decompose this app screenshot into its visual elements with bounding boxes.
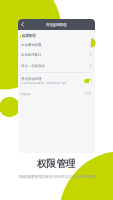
button[interactable]: 允许悬浮窗口	[18, 51, 95, 58]
button[interactable]: 允许通知权限	[18, 41, 95, 48]
staticText: 权限管理	[37, 158, 76, 170]
staticText: 高级权限管理功能开启后可以打开应用内权限	[19, 174, 95, 179]
staticText: 允许悬浮窗口	[21, 53, 89, 57]
button[interactable]: Back	[18, 20, 27, 29]
staticText: 开启后可自动清理后台，提升手机运行速度	[21, 82, 67, 85]
staticText: 开启自动清理	[21, 77, 42, 81]
staticText: 允许通知权限	[21, 43, 89, 47]
staticText: 开启应用管理	[46, 23, 67, 27]
staticText: 清理设置	[20, 92, 84, 95]
staticText: 后台－自动启动	[21, 64, 89, 68]
button[interactable]: 清理设置	[18, 90, 95, 96]
button[interactable]: 开启自动清理	[18, 75, 95, 87]
staticText: 权限管理	[22, 34, 36, 38]
button[interactable]: 后台－自动启动	[18, 62, 95, 69]
staticText: 已开启	[84, 92, 92, 95]
